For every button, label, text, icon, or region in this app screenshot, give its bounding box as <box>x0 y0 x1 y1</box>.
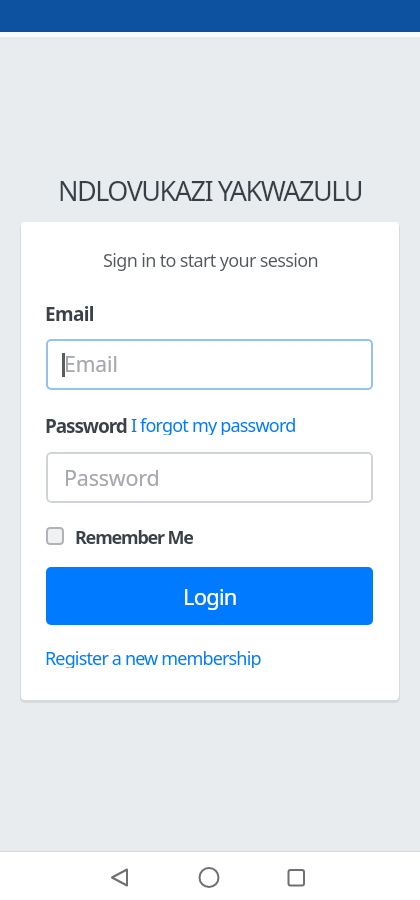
staticText: Login <box>183 581 237 611</box>
button[interactable]: Login <box>46 567 373 625</box>
staticText: NDLOVUKAZI YAKWAZULU <box>58 172 362 209</box>
button[interactable] <box>104 861 136 893</box>
button[interactable]: Email <box>46 339 373 390</box>
staticText: Password <box>45 413 127 435</box>
staticText: I forgot my password <box>127 413 296 435</box>
button[interactable]: Register a new membership <box>45 646 261 668</box>
button[interactable] <box>280 861 312 893</box>
staticText: Password <box>64 463 160 492</box>
staticText: Email <box>45 301 94 323</box>
staticText: Email <box>64 350 118 379</box>
button[interactable]: I forgot my password <box>127 413 296 435</box>
staticText: Remember Me <box>75 525 193 547</box>
button[interactable]: Password <box>46 452 373 503</box>
button[interactable] <box>193 861 225 893</box>
button[interactable]: Remember Me <box>46 525 193 547</box>
staticText: Sign in to start your session <box>103 248 318 273</box>
staticText: Register a new membership <box>45 646 261 668</box>
